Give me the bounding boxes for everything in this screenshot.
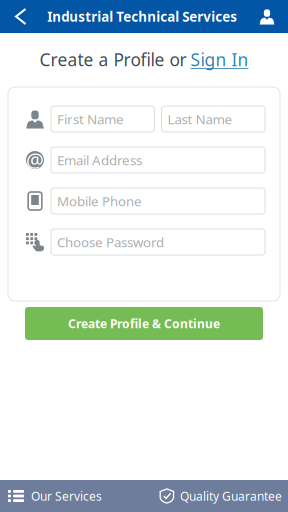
button[interactable]: Create Profile & Continue: [25, 307, 263, 340]
staticText: Mobile Phone: [57, 192, 142, 210]
staticText: @: [26, 146, 44, 173]
staticText: Last Name: [167, 110, 232, 128]
staticText: First Name: [57, 110, 124, 128]
staticText: Quality Guarantee: [180, 488, 282, 504]
button[interactable]: Back: [0, 0, 35, 33]
button[interactable]: Sign In: [190, 48, 248, 71]
button[interactable]: Account: [249, 0, 288, 33]
staticText: Sign In: [190, 48, 248, 71]
staticText: Our Services: [31, 488, 102, 504]
button[interactable]: Quality Guarantee: [144, 480, 288, 512]
staticText: Email Address: [57, 151, 142, 169]
staticText: Create Profile & Continue: [68, 315, 220, 331]
staticText: Create a Profile or: [39, 48, 186, 71]
staticText: Industrial Technical Services: [47, 8, 237, 25]
button[interactable]: Our Services: [0, 480, 144, 512]
staticText: Choose Password: [57, 233, 164, 251]
